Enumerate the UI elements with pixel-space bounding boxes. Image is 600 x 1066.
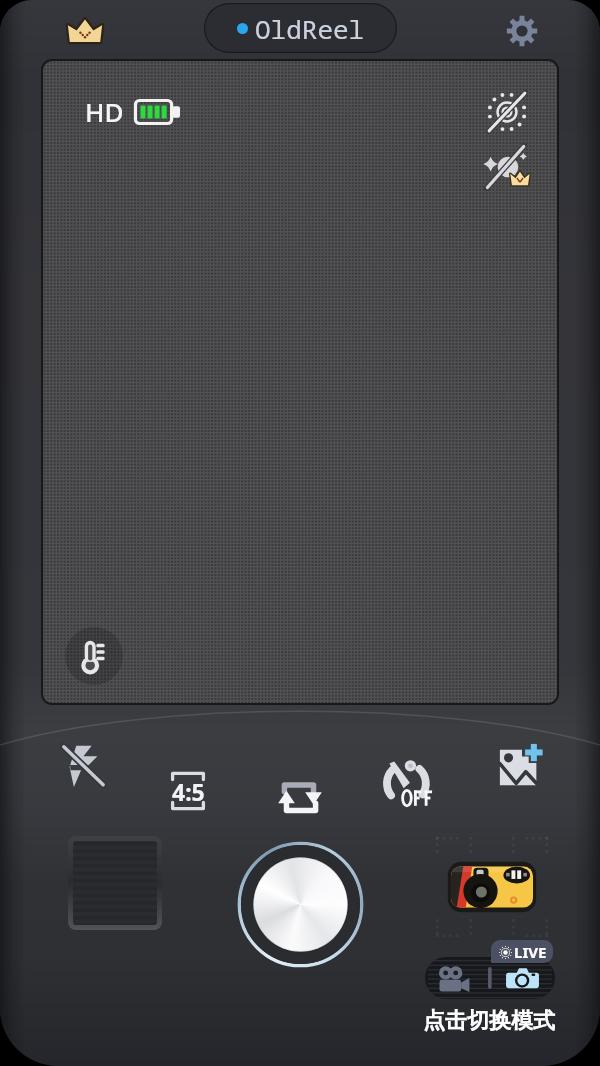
- button[interactable]: Add photo: [490, 735, 552, 797]
- button[interactable]: Aspect ratio 4 to 5: [158, 761, 218, 821]
- button[interactable]: Switch mode: [425, 957, 555, 999]
- button[interactable]: Timer off: [374, 751, 442, 819]
- button[interactable]: Flash off: [52, 734, 114, 796]
- staticText: 4:5: [172, 776, 205, 807]
- staticText: 点击切换模式: [423, 1007, 555, 1035]
- button[interactable]: Switch camera: [267, 764, 333, 830]
- staticText: LIVE: [514, 942, 547, 962]
- button[interactable]: Temperature: [65, 627, 123, 685]
- staticText: OldReel: [255, 11, 365, 46]
- button[interactable]: OldReel: [204, 3, 397, 53]
- button[interactable]: Shutter: [237, 841, 364, 968]
- button[interactable]: Effects off: [477, 137, 537, 197]
- button[interactable]: Live mode: [491, 940, 553, 963]
- button[interactable]: Flash off: [477, 82, 537, 142]
- staticText: HD: [85, 94, 124, 129]
- button[interactable]: Camera style: [436, 837, 548, 937]
- button[interactable]: Settings: [500, 9, 544, 53]
- button[interactable]: Premium: [62, 8, 108, 54]
